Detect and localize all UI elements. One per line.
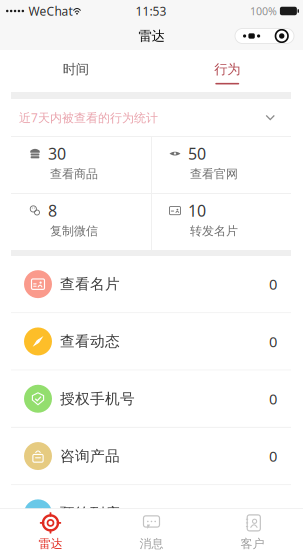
staticText: 100%	[250, 4, 277, 18]
button[interactable]: 时间	[0, 50, 151, 92]
staticText: 0	[269, 446, 277, 466]
button[interactable]: 行为	[151, 50, 303, 92]
button[interactable]: 客户	[202, 508, 303, 551]
staticText: 行为	[214, 61, 240, 77]
staticText: 客户	[240, 536, 264, 551]
staticText: 查看商品	[50, 167, 98, 181]
staticText: 咨询产品	[60, 447, 120, 465]
staticText: 近7天内被查看的行为统计	[19, 109, 158, 125]
staticText: 0	[269, 504, 277, 523]
button[interactable]: 雷达	[0, 508, 101, 551]
staticText: 10	[188, 200, 206, 221]
button[interactable]: 查看名片	[0, 256, 303, 312]
staticText: 0	[269, 389, 277, 408]
staticText: 查看名片	[60, 275, 120, 293]
staticText: 0	[269, 332, 277, 351]
staticText: 30	[48, 143, 66, 164]
button[interactable]: 预约到店	[0, 485, 303, 541]
staticText: 8	[48, 200, 57, 221]
staticText: WeChat	[29, 3, 73, 19]
staticText: 雷达	[138, 28, 164, 44]
staticText: 查看官网	[190, 167, 238, 181]
staticText: 复制微信	[50, 224, 98, 238]
staticText: 预约到店	[60, 504, 120, 522]
staticText: 时间	[63, 61, 89, 77]
button[interactable]: 咨询产品	[0, 428, 303, 484]
button[interactable]: 授权手机号	[0, 371, 303, 427]
staticText: 雷达	[38, 536, 62, 551]
button[interactable]: 消息	[101, 508, 202, 551]
staticText: 转发名片	[190, 224, 238, 238]
staticText: 消息	[139, 536, 163, 551]
staticText: 11:53	[135, 3, 166, 19]
staticText: 0	[269, 274, 277, 294]
staticText: 查看动态	[60, 332, 120, 350]
staticText: 授权手机号	[60, 390, 135, 408]
button[interactable]: More options	[235, 28, 294, 43]
staticText: 50	[188, 143, 206, 164]
button[interactable]: 查看动态	[0, 313, 303, 370]
button[interactable]: 近7天内被查看的行为统计	[0, 99, 303, 136]
